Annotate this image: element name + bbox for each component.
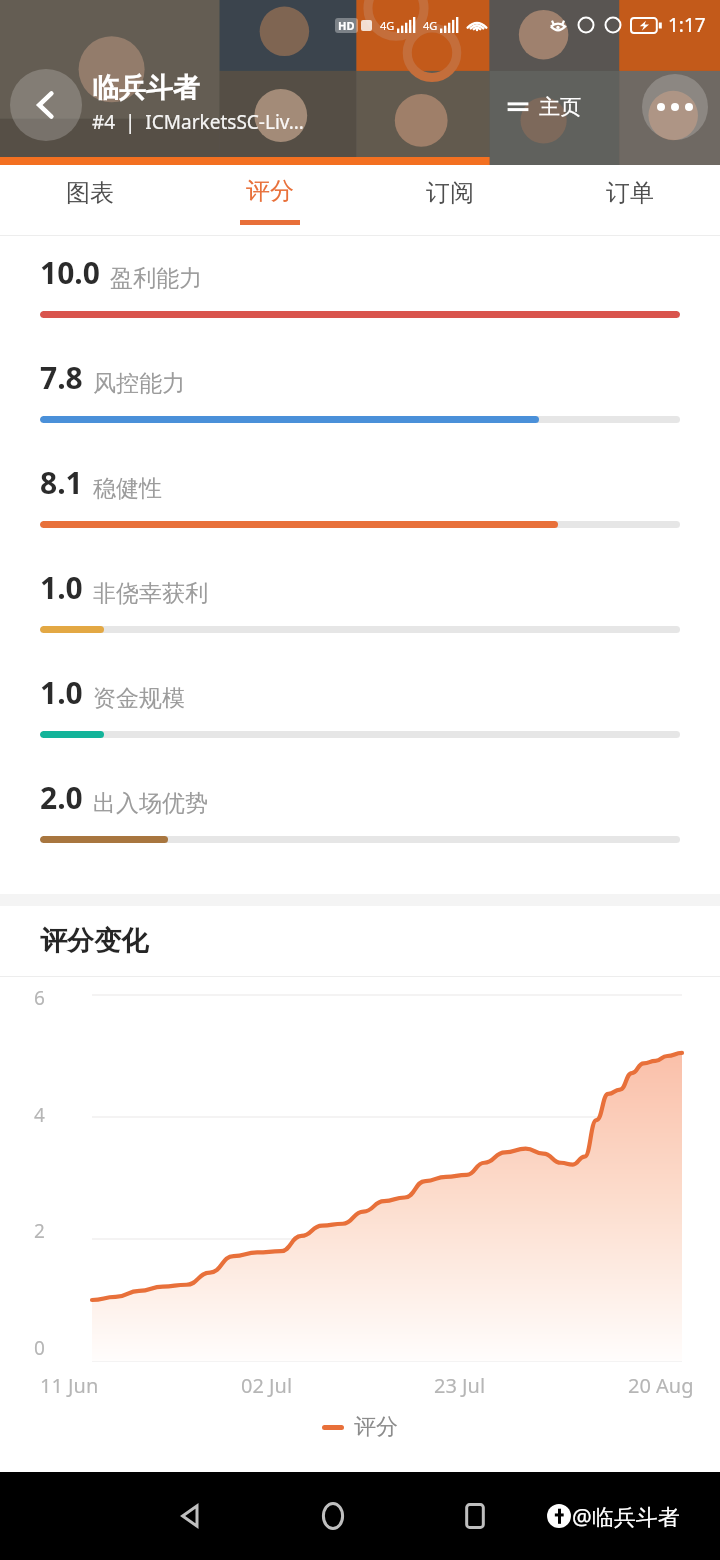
button[interactable]: Recent apps — [404, 1472, 546, 1560]
staticText: 非侥幸获利 — [93, 579, 208, 608]
button[interactable]: 7.8 — [40, 357, 680, 462]
button[interactable]: 图表 — [0, 165, 180, 235]
staticText: 1.0 — [40, 567, 83, 608]
staticText: 02 Jul — [241, 1372, 293, 1399]
staticText: 图表 — [66, 178, 114, 208]
staticText: 主页 — [539, 94, 581, 120]
staticText: 4G — [423, 18, 438, 33]
staticText: 2.0 — [40, 777, 83, 818]
staticText: 评分 — [354, 1413, 398, 1441]
button[interactable]: 8.1 — [40, 462, 680, 567]
button[interactable]: 订阅 — [360, 165, 540, 235]
staticText: #4 | ICMarketsSC-Liv... — [92, 109, 304, 135]
staticText: 20 Aug — [628, 1372, 694, 1399]
button[interactable]: 评分 — [322, 1413, 398, 1441]
staticText: 7.8 — [40, 357, 83, 398]
staticText: 11 Jun — [40, 1372, 99, 1399]
staticText: 出入场优势 — [93, 789, 208, 818]
staticText: 资金规模 — [93, 684, 185, 713]
staticText: 评分 — [246, 176, 294, 206]
staticText: 1.0 — [40, 672, 83, 713]
button[interactable]: 1.0 — [40, 672, 680, 777]
button[interactable]: 评分 — [180, 165, 360, 235]
staticText: 4 — [34, 1102, 45, 1128]
staticText: 10.0 — [40, 252, 100, 293]
staticText: 稳健性 — [93, 474, 162, 503]
button[interactable]: 2.0 — [40, 777, 680, 882]
staticText: 4G — [380, 18, 395, 33]
button[interactable]: 订单 — [540, 165, 720, 235]
button[interactable]: Back — [120, 1472, 262, 1560]
staticText: 6 — [34, 985, 45, 1011]
staticText: 0 — [34, 1335, 45, 1361]
staticText: HD — [338, 18, 355, 33]
button[interactable]: Back — [10, 69, 82, 141]
staticText: 订阅 — [426, 178, 474, 208]
button[interactable]: More options — [642, 74, 708, 140]
button[interactable]: Home — [262, 1472, 404, 1560]
staticText: 订单 — [606, 178, 654, 208]
staticText: 评分变化 — [40, 924, 148, 958]
staticText: 2 — [34, 1218, 45, 1244]
staticText: 临兵斗者 — [92, 71, 200, 105]
staticText: 23 Jul — [434, 1372, 486, 1399]
button[interactable]: 10.0 — [40, 252, 680, 357]
staticText: 8.1 — [40, 462, 83, 503]
staticText: 1:17 — [668, 12, 706, 38]
staticText: 盈利能力 — [110, 264, 202, 293]
staticText: 风控能力 — [93, 369, 185, 398]
staticText: @临兵斗者 — [572, 1501, 680, 1531]
button[interactable]: 1.0 — [40, 567, 680, 672]
button[interactable]: 主页 — [505, 94, 581, 120]
